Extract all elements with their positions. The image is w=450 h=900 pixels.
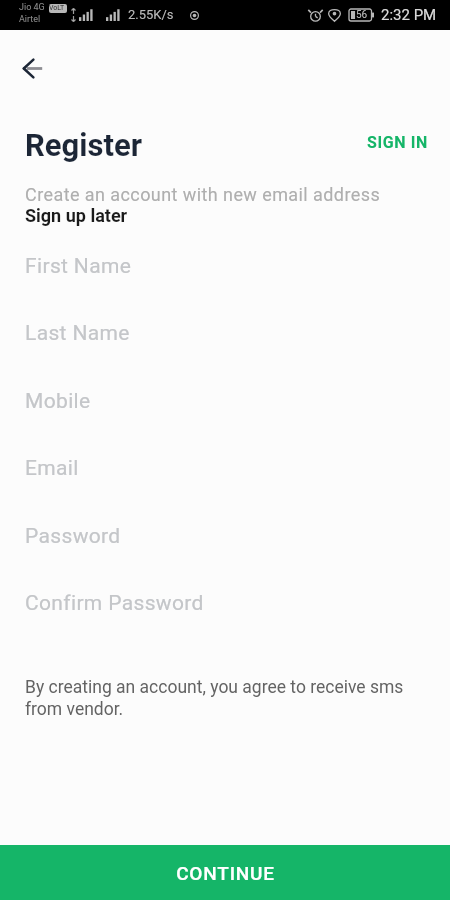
staticText: Create an account with new email address	[25, 184, 381, 205]
staticText: 2:32 PM	[381, 6, 437, 24]
staticText: CONTINUE	[176, 862, 275, 884]
staticText: Sign up later	[25, 205, 128, 226]
staticText: Register	[25, 127, 142, 163]
button[interactable]: Sign up later	[25, 205, 128, 226]
staticText: Email	[25, 456, 79, 481]
staticText: By creating an account, you agree to rec…	[25, 677, 404, 719]
staticText: Last Name	[25, 321, 130, 346]
button[interactable]: Last Name	[0, 305, 450, 361]
staticText: Password	[25, 524, 121, 549]
staticText: Mobile	[25, 389, 91, 414]
button[interactable]: CONTINUE	[0, 845, 450, 900]
button[interactable]: Mobile	[0, 373, 450, 429]
button[interactable]: First Name	[0, 238, 450, 294]
staticText: VoLTE	[49, 4, 67, 13]
staticText: 2.55K/s	[128, 7, 174, 22]
staticText: Airtel	[19, 14, 41, 25]
staticText: 56	[356, 9, 368, 21]
staticText: First Name	[25, 254, 132, 279]
staticText: SIGN IN	[367, 133, 428, 152]
staticText: Jio 4G	[19, 2, 45, 13]
button[interactable]: Confirm Password	[0, 575, 450, 631]
button[interactable]: Password	[0, 508, 450, 564]
button[interactable]: SIGN IN	[359, 123, 436, 162]
button[interactable]: Back	[10, 45, 56, 91]
button[interactable]: Email	[0, 440, 450, 496]
staticText: Confirm Password	[25, 591, 204, 616]
